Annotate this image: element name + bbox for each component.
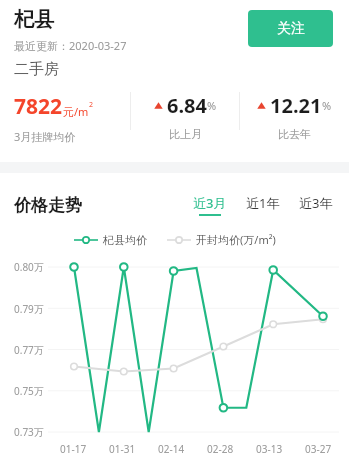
staticText: 比去年 (278, 127, 311, 141)
staticText: 01-17 (60, 442, 87, 456)
staticText: 价格走势 (14, 195, 82, 216)
staticText: 3月挂牌均价 (14, 129, 76, 144)
staticText: 开封均价(万/m²) (196, 232, 276, 247)
staticText: 02-28 (207, 442, 234, 456)
staticText: 01-31 (109, 442, 136, 456)
staticText: 杞县 (14, 7, 54, 32)
button[interactable]: 近3年 (297, 194, 335, 216)
staticText: 近1年 (246, 194, 280, 212)
staticText: 12.21 (270, 92, 322, 119)
staticText: 03-13 (256, 442, 283, 456)
staticText: 近3年 (299, 194, 333, 212)
button[interactable]: 关注 (248, 10, 333, 47)
staticText: 0.77万 (14, 343, 44, 357)
staticText: 元/m (63, 104, 89, 119)
button[interactable]: 近3月 (191, 194, 229, 216)
staticText: 0.79万 (14, 302, 44, 316)
staticText: 2 (89, 100, 94, 110)
staticText: 杞县均价 (103, 233, 147, 247)
staticText: 0.80万 (14, 260, 44, 274)
staticText: 7822 (14, 92, 63, 121)
staticText: 0.75万 (14, 384, 44, 398)
staticText: 近3月 (193, 194, 227, 212)
staticText: 二手房 (14, 60, 59, 79)
staticText: 0.73万 (14, 425, 44, 439)
staticText: % (207, 98, 217, 113)
staticText: 最近更新：2020-03-27 (14, 38, 127, 53)
staticText: 02-14 (158, 442, 185, 456)
staticText: 关注 (277, 20, 305, 38)
staticText: 6.84 (167, 92, 207, 119)
staticText: 比上月 (169, 127, 202, 141)
staticText: % (322, 98, 332, 113)
staticText: 03-27 (305, 442, 332, 456)
button[interactable]: 近1年 (244, 194, 282, 216)
